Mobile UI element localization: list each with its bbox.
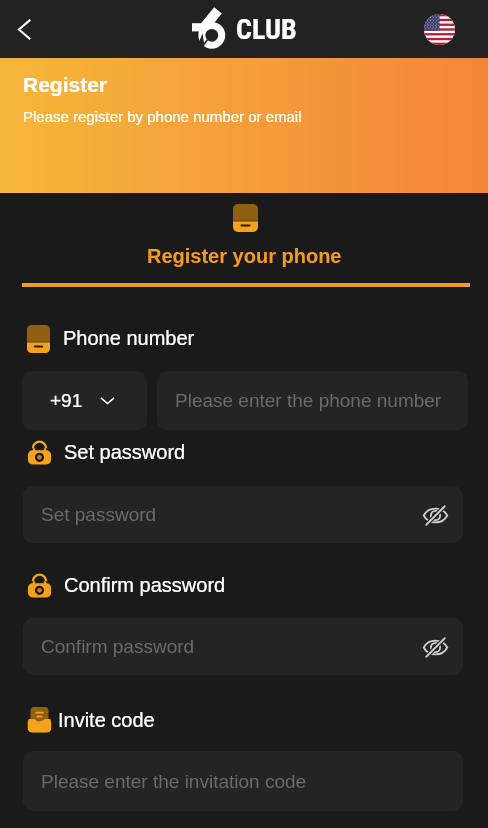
- button[interactable]: Show password: [417, 629, 453, 665]
- button[interactable]: Please enter the phone number: [157, 371, 468, 430]
- staticText: Please enter the phone number: [175, 390, 442, 411]
- staticText: Invite code: [58, 709, 155, 731]
- staticText: Register: [23, 73, 108, 96]
- button[interactable]: Please enter the invitation code: [23, 751, 463, 811]
- staticText: Confirm password: [41, 636, 195, 657]
- button[interactable]: +91: [22, 371, 147, 430]
- staticText: Phone number: [63, 327, 195, 349]
- button[interactable]: Language: [424, 14, 455, 45]
- staticText: Please register by phone number or email: [23, 108, 302, 125]
- button[interactable]: Show password: [417, 497, 453, 533]
- button[interactable]: Set password: [23, 486, 463, 543]
- staticText: Set password: [41, 504, 157, 525]
- staticText: Confirm password: [64, 574, 226, 596]
- button[interactable]: Confirm password: [23, 618, 463, 675]
- staticText: Register your phone: [147, 245, 342, 267]
- staticText: +91: [50, 390, 83, 411]
- staticText: CLUB: [236, 13, 297, 46]
- button[interactable]: Back: [4, 9, 44, 49]
- staticText: Please enter the invitation code: [41, 771, 307, 792]
- staticText: Set password: [64, 441, 186, 463]
